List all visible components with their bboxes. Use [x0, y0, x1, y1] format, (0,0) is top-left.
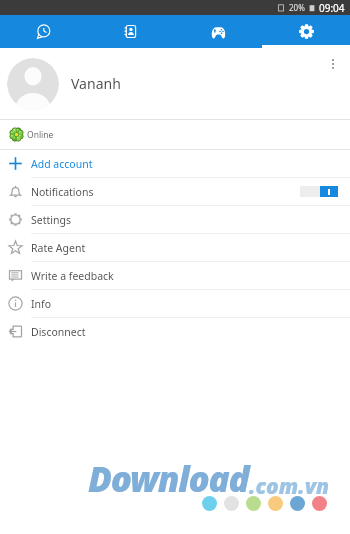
button[interactable]: Settings — [0, 206, 350, 233]
button[interactable]: Disconnect — [0, 318, 350, 345]
button[interactable]: Notifications — [0, 178, 350, 205]
button[interactable]: More options — [321, 52, 345, 76]
staticText: Rate Agent — [31, 241, 86, 255]
staticText: Info — [31, 297, 52, 311]
button[interactable]: Info — [0, 290, 350, 317]
button[interactable]: Vananh — [0, 48, 350, 119]
staticText: Online — [27, 129, 54, 141]
button[interactable]: Add account — [0, 150, 350, 177]
button[interactable]: Contacts — [87, 15, 174, 48]
button[interactable]: Recents — [0, 15, 87, 48]
staticText: .com.vn — [249, 472, 330, 501]
button[interactable]: Rate Agent — [0, 234, 350, 261]
staticText: Disconnect — [31, 325, 86, 339]
staticText: Settings — [31, 213, 71, 227]
button[interactable]: Write a feedback — [0, 262, 350, 289]
staticText: Download — [88, 455, 249, 503]
staticText: 09:04 — [319, 1, 345, 15]
button[interactable]: Games — [174, 15, 262, 48]
staticText: Write a feedback — [31, 269, 114, 283]
staticText: Add account — [31, 157, 93, 171]
button[interactable]: Settings — [262, 15, 350, 48]
staticText: Notifications — [31, 185, 94, 199]
button[interactable]: Notifications toggle — [300, 186, 338, 197]
staticText: 20% — [289, 2, 305, 13]
staticText: Vananh — [71, 74, 121, 93]
button[interactable]: Online — [0, 120, 350, 149]
